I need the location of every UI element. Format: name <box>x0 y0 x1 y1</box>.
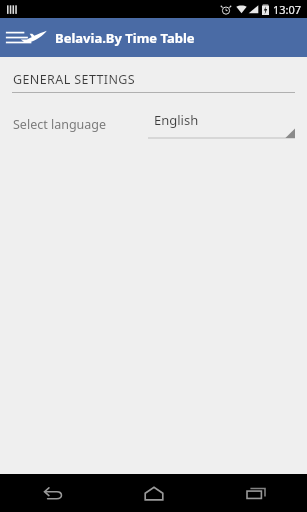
button[interactable]: Recent apps <box>205 474 307 512</box>
button[interactable]: Home <box>103 474 205 512</box>
button[interactable]: Select language spinner <box>148 108 295 140</box>
staticText: Select language <box>13 116 107 133</box>
staticText: Belavia.By Time Table <box>55 29 195 47</box>
staticText: English <box>154 111 199 129</box>
button[interactable]: Back <box>0 474 103 512</box>
button[interactable]: Belavia logo <box>3 21 51 55</box>
button[interactable]: Select language <box>0 107 307 141</box>
staticText: 13:07 <box>273 2 302 17</box>
staticText: GENERAL SETTINGS <box>13 71 136 88</box>
